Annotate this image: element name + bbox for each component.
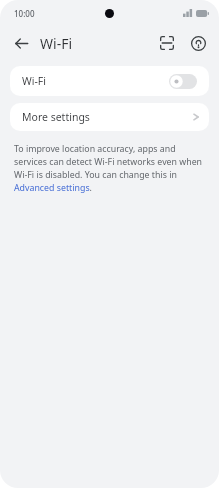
staticText: 10:00 (14, 8, 35, 19)
button[interactable]: More settings (10, 103, 209, 131)
staticText: Wi-Fi (22, 74, 47, 88)
staticText: Wi-Fi (40, 34, 73, 53)
button[interactable]: Wi-Fi (10, 66, 209, 96)
staticText: More settings (22, 110, 90, 124)
button[interactable]: Help (185, 30, 211, 56)
staticText: To improve location accuracy, apps and s… (14, 143, 205, 194)
button[interactable]: Scan QR code (154, 30, 180, 56)
button[interactable]: Back (8, 30, 34, 56)
